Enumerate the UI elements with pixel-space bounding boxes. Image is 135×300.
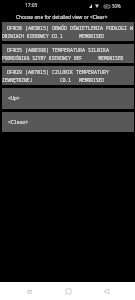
staticText: <Clear> [8, 119, 29, 126]
staticText: <Up> [8, 95, 20, 102]
staticText: DF029 (A07015) CZUJNIK TEMPERATURY [7, 69, 110, 76]
button[interactable]: DF038 (A03015) OBWÓD OŚWIETLENIA PODŁOGI… [2, 22, 134, 41]
staticText: PODNOŚNIKA SZYBY KIEROWCY DEF MEMORISED [2, 55, 124, 61]
button[interactable]: Recent apps [20, 282, 38, 300]
staticText: DF038 (A03015) OBWÓD OŚWIETLENIA PODŁOGI… [7, 25, 134, 32]
button[interactable]: DF035 (A00398) TEMPERATURA SILNIKA [2, 44, 134, 63]
button[interactable]: DF029 (A07015) CZUJNIK TEMPERATURY [2, 66, 134, 85]
staticText: 17:05 [25, 2, 38, 9]
staticText: 50% [112, 3, 121, 9]
button[interactable]: <Clear> [2, 112, 134, 132]
staticText: DF035 (A00398) TEMPERATURA SILNIKA [7, 47, 110, 54]
button[interactable]: Back [97, 282, 115, 300]
staticText: ZEWNĘTRZNEJ CO.1 MEMORISED [2, 77, 104, 83]
staticText: Choose one for detailed view or <Clear> [16, 14, 108, 21]
staticText: DRZWIACH KIEROWCY CO.1 MEMORISED [2, 33, 104, 39]
button[interactable]: <Up> [2, 88, 134, 109]
button[interactable]: Home [59, 282, 77, 300]
